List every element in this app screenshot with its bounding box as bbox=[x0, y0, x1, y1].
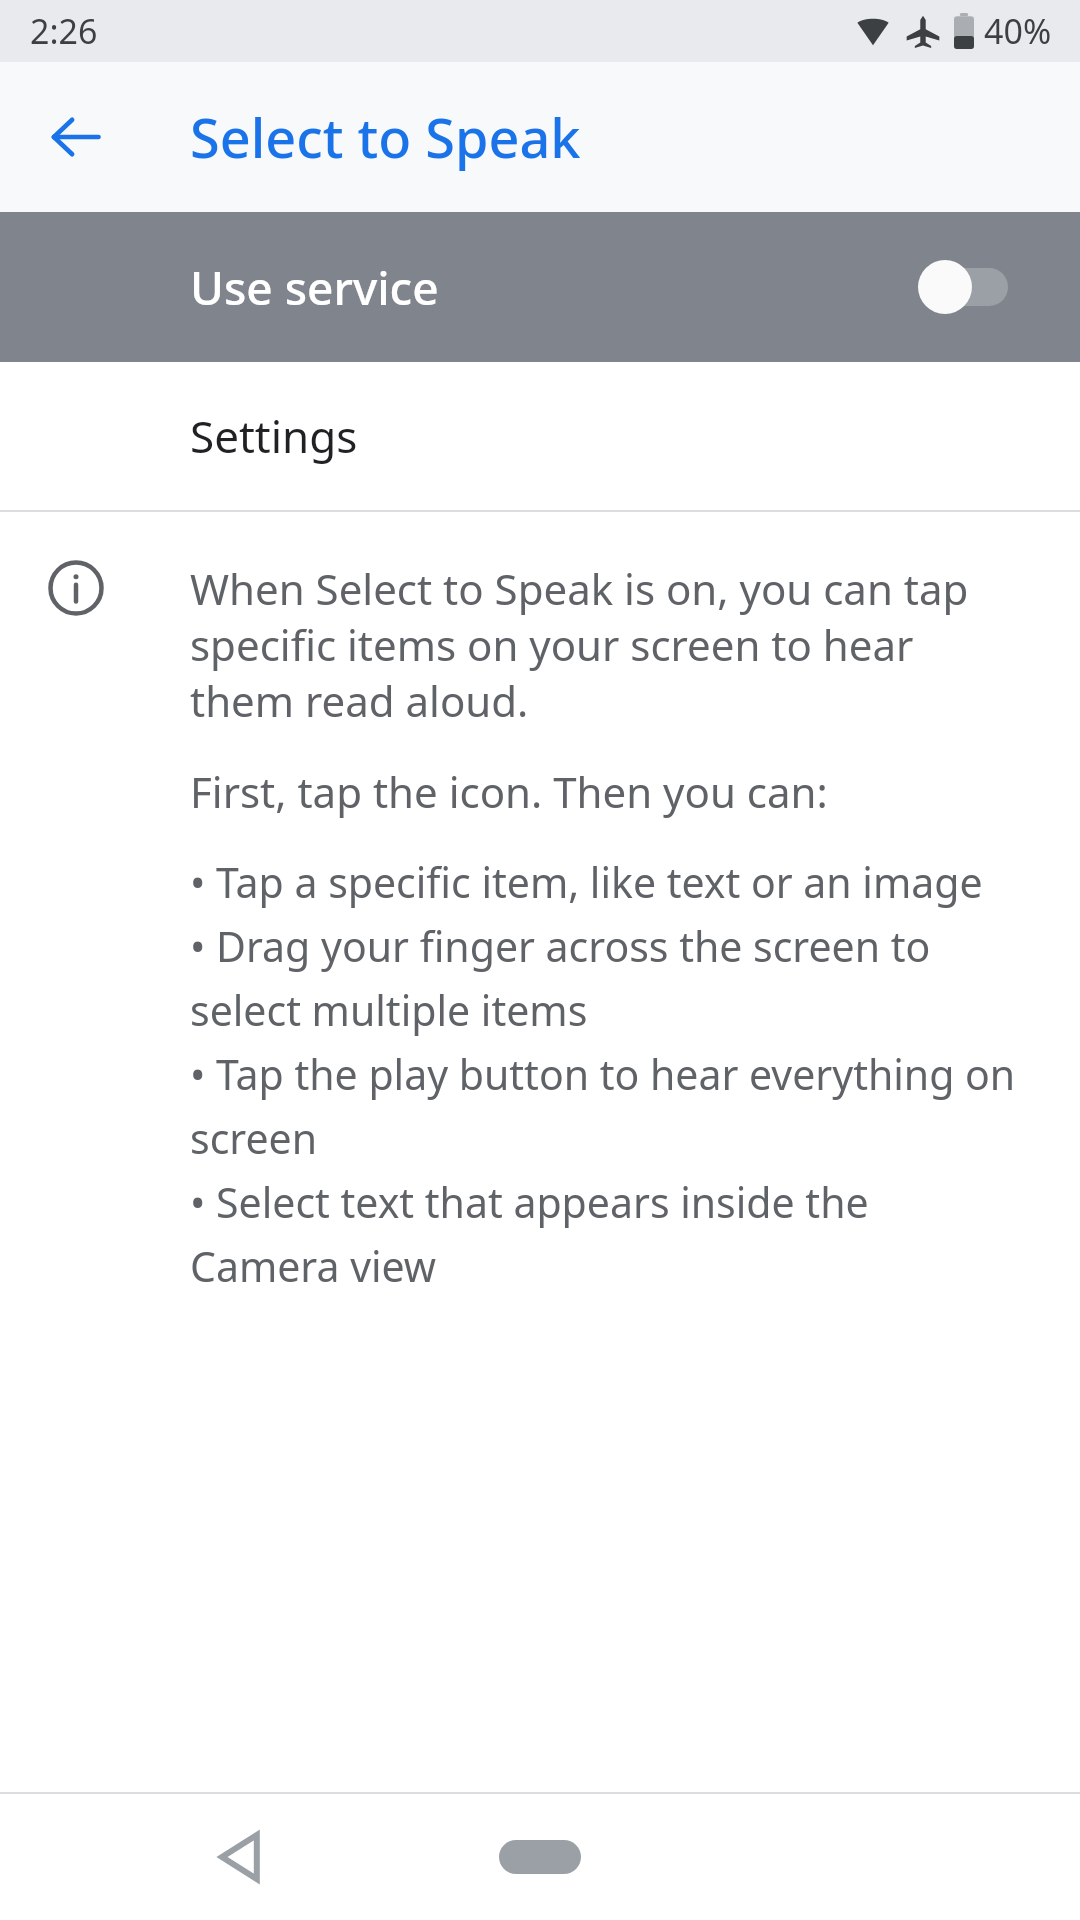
staticText: Select to Speak bbox=[190, 100, 581, 174]
staticText: When Select to Speak is on, you can tap … bbox=[190, 560, 1024, 729]
button[interactable]: Use service bbox=[0, 212, 1080, 362]
button[interactable]: Settings bbox=[0, 362, 1080, 510]
staticText: Use service bbox=[190, 256, 918, 319]
button[interactable]: Back bbox=[22, 83, 130, 191]
button[interactable]: Back bbox=[180, 1797, 300, 1917]
staticText: First, tap the icon. Then you can: bbox=[190, 763, 828, 820]
staticText: Settings bbox=[190, 406, 358, 466]
button[interactable]: Home bbox=[470, 1797, 610, 1917]
staticText: • Tap a specific item, like text or an i… bbox=[190, 854, 1024, 1294]
staticText: 2:26 bbox=[30, 8, 98, 54]
other: Use service toggle bbox=[918, 257, 1008, 317]
staticText: 40% bbox=[984, 8, 1052, 54]
